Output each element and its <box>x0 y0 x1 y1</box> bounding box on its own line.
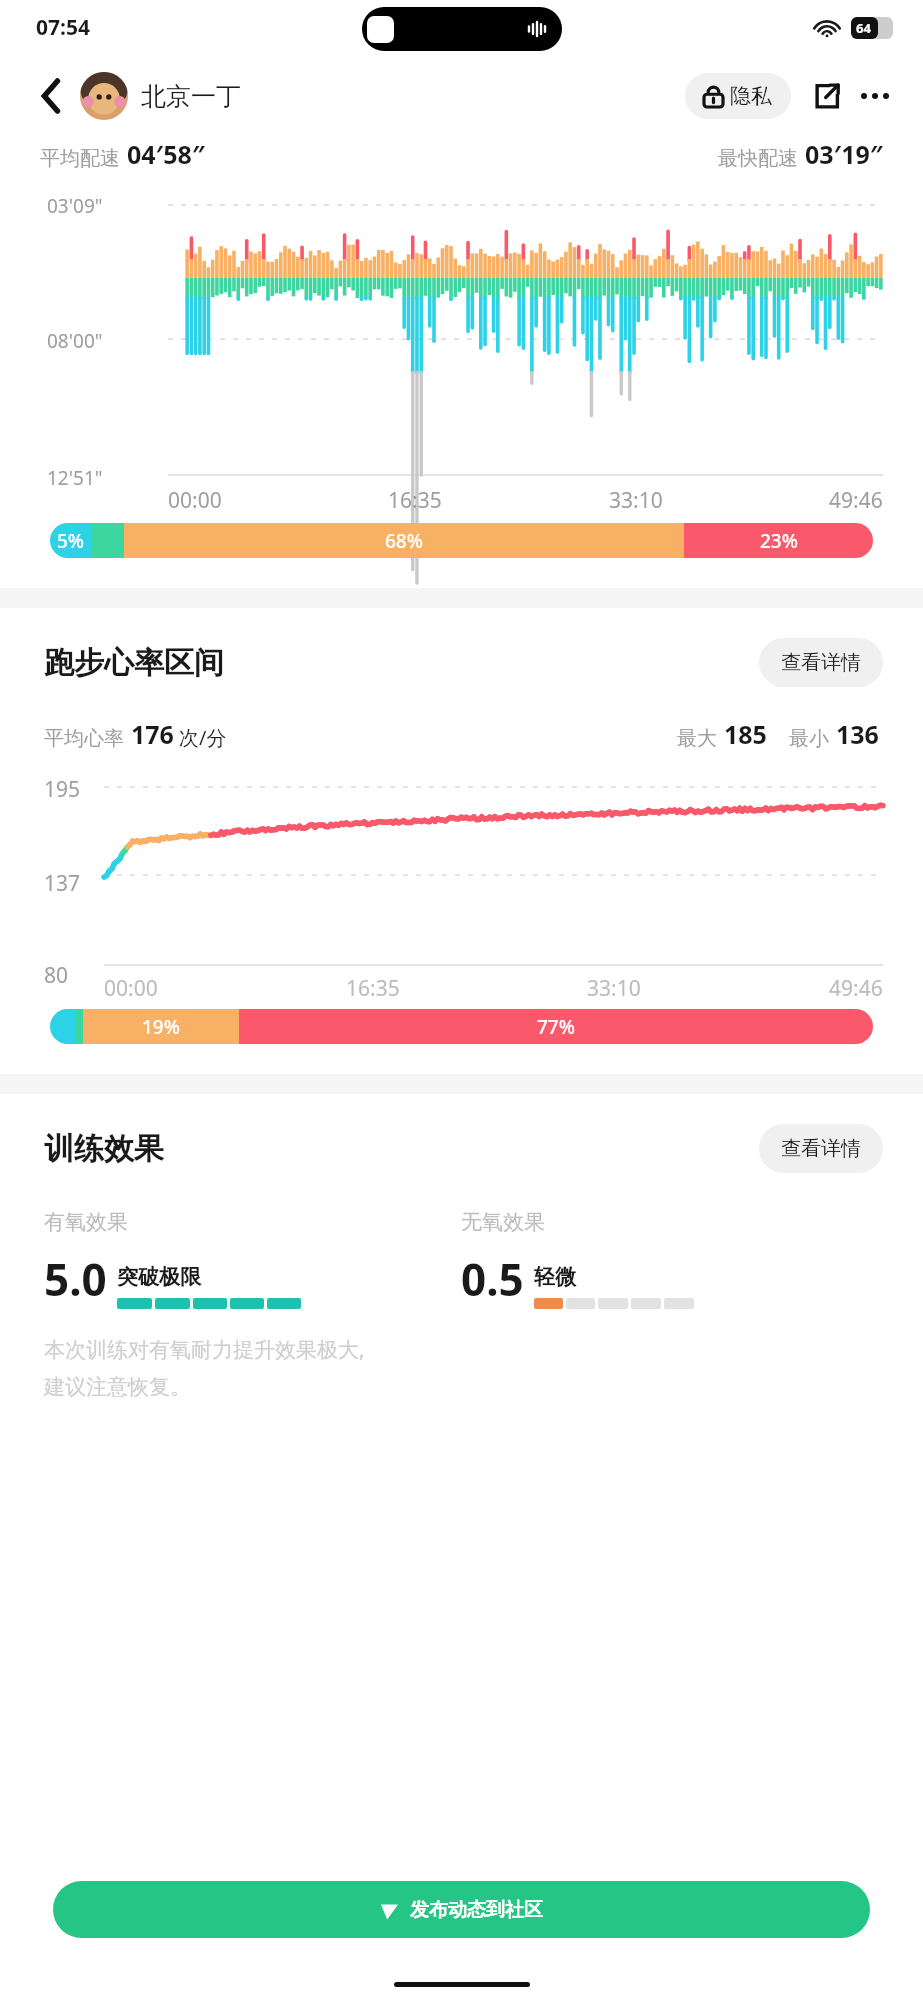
button[interactable]: 查看详情 <box>759 1124 883 1173</box>
staticText: 12'51" <box>47 465 103 491</box>
staticText: 建议注意恢复。 <box>44 1374 191 1400</box>
staticText: 16:35 <box>388 486 442 515</box>
staticText: 16:35 <box>346 974 400 1003</box>
button[interactable]: Share <box>805 74 849 118</box>
staticText: 查看详情 <box>781 1136 861 1161</box>
staticText: 跑步心率区间 <box>44 644 224 682</box>
staticText: 隐私 <box>730 83 772 109</box>
staticText: 49:46 <box>829 486 883 515</box>
button[interactable]: 北京一丁 <box>80 72 241 120</box>
staticText: 64 <box>856 19 871 37</box>
staticText: 次/分 <box>179 724 227 751</box>
staticText: 19% <box>142 1014 180 1040</box>
staticText: 33:10 <box>609 486 663 515</box>
staticText: 23% <box>760 528 798 554</box>
staticText: 最大 <box>677 726 717 751</box>
staticText: 0.5 <box>461 1249 524 1309</box>
staticText: 突破极限 <box>117 1264 201 1290</box>
staticText: 03′19″ <box>805 137 883 171</box>
staticText: 176 <box>131 717 174 751</box>
staticText: 77% <box>537 1014 575 1040</box>
staticText: 195 <box>44 775 81 804</box>
staticText: 5% <box>57 528 85 554</box>
staticText: 5.0 <box>44 1249 107 1309</box>
staticText: 07:54 <box>36 13 90 42</box>
staticText: 平均心率 <box>44 726 124 751</box>
staticText: 04′58″ <box>127 137 205 171</box>
staticText: 最快配速 <box>718 146 798 171</box>
staticText: 49:46 <box>829 974 883 1003</box>
staticText: 137 <box>44 869 81 898</box>
button[interactable]: More options <box>853 74 897 118</box>
staticText: 平均配速 <box>40 146 120 171</box>
button[interactable]: 发布动态到社区 <box>53 1881 870 1938</box>
staticText: 00:00 <box>168 486 222 515</box>
staticText: 训练效果 <box>44 1130 164 1168</box>
staticText: 北京一丁 <box>141 81 241 112</box>
staticText: 33:10 <box>587 974 641 1003</box>
staticText: 80 <box>44 961 69 990</box>
staticText: 08'00" <box>47 328 103 354</box>
staticText: 无氧效果 <box>461 1209 545 1235</box>
staticText: 185 <box>724 717 767 751</box>
staticText: 最小 <box>789 726 829 751</box>
staticText: 发布动态到社区 <box>410 1898 543 1922</box>
staticText: 本次训练对有氧耐力提升效果极大, <box>44 1335 365 1364</box>
staticText: 有氧效果 <box>44 1209 128 1235</box>
staticText: 00:00 <box>104 974 158 1003</box>
button[interactable]: Back <box>30 75 72 117</box>
staticText: 68% <box>385 528 423 554</box>
staticText: 查看详情 <box>781 650 861 675</box>
staticText: 136 <box>836 717 879 751</box>
button[interactable]: 隐私 <box>685 73 791 119</box>
staticText: 03'09" <box>47 193 103 219</box>
button[interactable]: 查看详情 <box>759 638 883 687</box>
staticText: 轻微 <box>534 1264 576 1290</box>
